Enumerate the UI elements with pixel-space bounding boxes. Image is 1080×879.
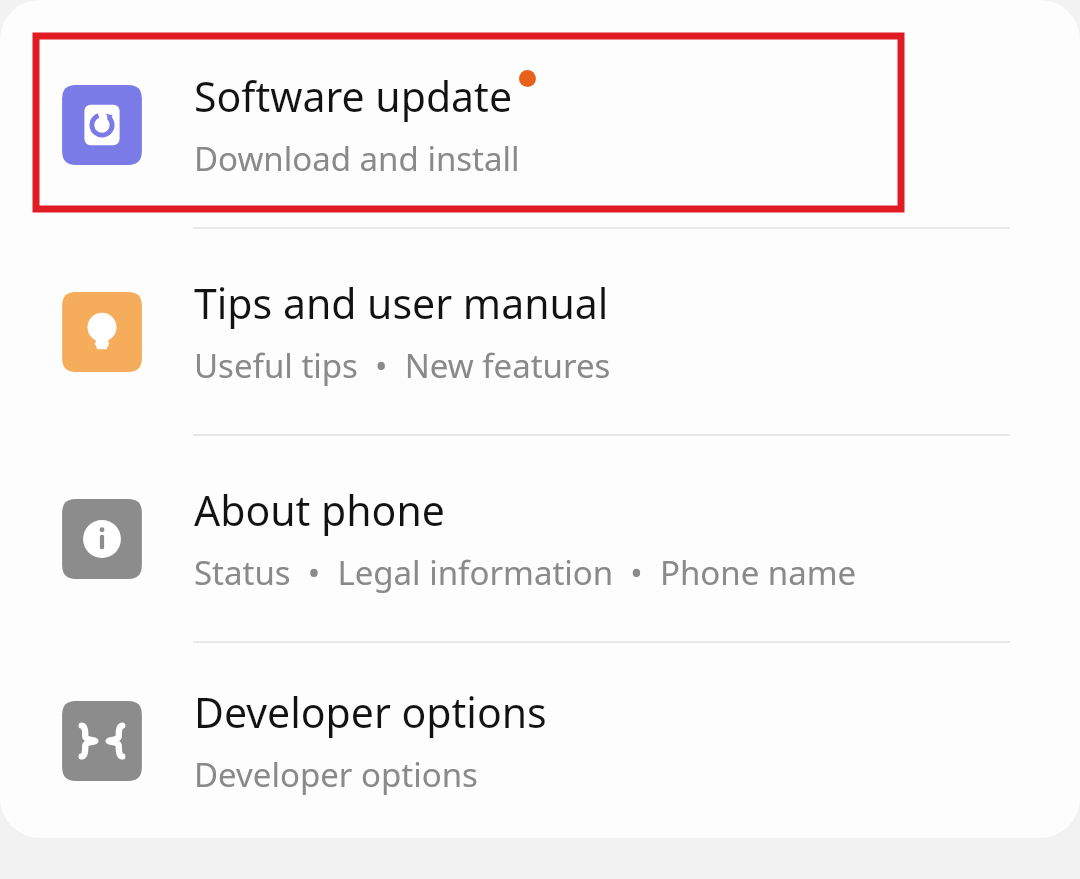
button[interactable]: Software update (0, 22, 1080, 227)
staticText: Tips and user manual (194, 275, 609, 331)
staticText: Status • Legal information • Phone name (194, 550, 857, 595)
staticText: Download and install (194, 136, 520, 181)
staticText: Useful tips • New features (194, 343, 611, 388)
staticText: About phone (194, 482, 445, 538)
staticText: Developer options (194, 752, 478, 797)
button[interactable]: Developer options (0, 643, 1080, 838)
staticText: Software update (194, 68, 513, 124)
other: Highlight around Software update (0, 0, 1080, 879)
staticText: Developer options (194, 684, 547, 740)
button[interactable]: About phone (0, 436, 1080, 641)
button[interactable]: Tips and user manual (0, 229, 1080, 434)
